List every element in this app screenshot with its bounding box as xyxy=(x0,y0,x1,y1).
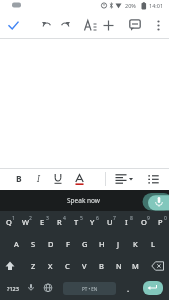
button[interactable] xyxy=(41,277,55,299)
staticText: U xyxy=(107,217,113,227)
staticText: 6 xyxy=(96,215,99,222)
button[interactable]: I xyxy=(118,211,135,233)
staticText: G xyxy=(82,239,88,249)
button[interactable]: P xyxy=(152,211,169,233)
button[interactable] xyxy=(5,17,21,33)
button[interactable]: C xyxy=(59,255,76,277)
button[interactable]: K xyxy=(127,233,144,255)
staticText: V xyxy=(82,261,87,271)
button[interactable]: J xyxy=(110,233,127,255)
button[interactable] xyxy=(24,277,38,299)
button[interactable]: Q xyxy=(0,211,17,233)
staticText: T xyxy=(74,217,79,227)
staticText: 7 xyxy=(113,215,116,222)
staticText: ?123 xyxy=(7,285,19,292)
button[interactable]: N xyxy=(110,255,127,277)
button[interactable] xyxy=(82,17,98,33)
button[interactable]: W xyxy=(17,211,34,233)
button[interactable]: L xyxy=(144,233,161,255)
staticText: . xyxy=(127,283,130,294)
staticText: 5 xyxy=(80,215,83,222)
staticText: I xyxy=(37,173,40,185)
button[interactable]: D xyxy=(42,233,59,255)
button[interactable]: X xyxy=(42,255,59,277)
button[interactable] xyxy=(145,171,161,187)
staticText: 8 xyxy=(130,215,133,222)
button[interactable]: F xyxy=(59,233,76,255)
staticText: 0 xyxy=(164,215,167,222)
staticText: 9 xyxy=(147,215,150,222)
staticText: S xyxy=(31,239,36,249)
button[interactable]: R xyxy=(51,211,68,233)
staticText: 3 xyxy=(46,215,49,222)
staticText: E xyxy=(40,217,45,227)
staticText: H xyxy=(99,239,105,249)
button[interactable]: B xyxy=(93,255,110,277)
staticText: B xyxy=(99,261,104,271)
button[interactable]: Y xyxy=(84,211,101,233)
staticText: B xyxy=(16,173,22,185)
button[interactable] xyxy=(57,17,73,33)
button[interactable]: V xyxy=(76,255,93,277)
staticText: Q xyxy=(6,217,12,227)
button[interactable] xyxy=(100,17,116,33)
staticText: P xyxy=(158,217,163,227)
staticText: Speak now xyxy=(67,196,100,205)
button[interactable]: PT • EN xyxy=(63,282,116,295)
staticText: PT • EN xyxy=(82,286,98,292)
button[interactable]: B xyxy=(12,171,26,187)
staticText: R xyxy=(57,217,62,227)
staticText: W xyxy=(22,217,29,227)
button[interactable]: . xyxy=(122,277,135,299)
staticText: J xyxy=(117,239,120,249)
button[interactable] xyxy=(2,255,18,277)
button[interactable] xyxy=(127,17,143,33)
button[interactable]: Speak now xyxy=(0,190,169,211)
button[interactable]: O xyxy=(135,211,152,233)
button[interactable] xyxy=(151,17,165,33)
button[interactable] xyxy=(143,281,163,295)
staticText: O xyxy=(141,217,147,227)
button[interactable]: H xyxy=(93,233,110,255)
button[interactable]: U xyxy=(101,211,118,233)
button[interactable]: S xyxy=(25,233,42,255)
button[interactable]: M xyxy=(127,255,144,277)
staticText: C xyxy=(65,261,70,271)
button[interactable] xyxy=(72,171,86,187)
button[interactable]: T xyxy=(68,211,85,233)
staticText: A xyxy=(14,239,19,249)
staticText: 2 xyxy=(29,215,32,222)
staticText: N xyxy=(116,261,122,271)
button[interactable]: A xyxy=(8,233,25,255)
staticText: 14:01 xyxy=(149,2,164,9)
button[interactable] xyxy=(51,171,65,187)
staticText: 4 xyxy=(63,215,66,222)
staticText: F xyxy=(66,239,70,249)
button[interactable]: G xyxy=(76,233,93,255)
button[interactable] xyxy=(39,17,55,33)
staticText: X xyxy=(48,261,53,271)
button[interactable]: E xyxy=(34,211,51,233)
button[interactable]: Z xyxy=(25,255,42,277)
button[interactable] xyxy=(149,255,167,277)
button[interactable] xyxy=(113,171,135,187)
staticText: D xyxy=(48,239,54,249)
staticText: I xyxy=(125,217,128,227)
button[interactable]: I xyxy=(31,171,45,187)
staticText: L xyxy=(151,239,155,249)
staticText: Z xyxy=(31,261,36,271)
staticText: K xyxy=(133,239,138,249)
staticText: 1 xyxy=(12,215,15,222)
staticText: M xyxy=(132,261,139,271)
staticText: 20% xyxy=(125,2,136,9)
staticText: Y xyxy=(90,217,95,227)
button[interactable]: ?123 xyxy=(2,277,23,299)
